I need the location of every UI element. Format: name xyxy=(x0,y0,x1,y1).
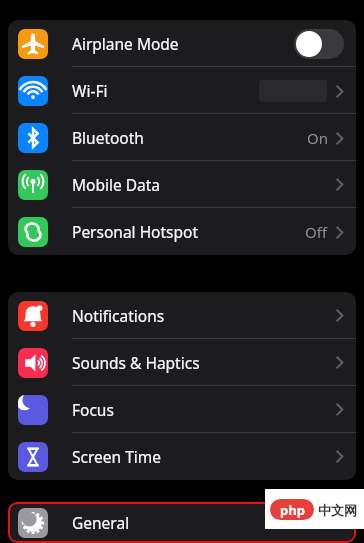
staticText: php xyxy=(280,501,305,519)
staticText: Focus xyxy=(72,399,114,420)
staticText: Wi-Fi xyxy=(72,80,108,101)
button[interactable]: Focus xyxy=(8,386,356,433)
button[interactable]: Personal Hotspot xyxy=(8,208,356,255)
staticText: 中文网 xyxy=(318,502,357,518)
staticText: General xyxy=(72,512,130,533)
button[interactable]: Airplane Mode toggle, off xyxy=(294,29,344,59)
button[interactable]: Airplane Mode xyxy=(8,20,356,67)
staticText: Airplane Mode xyxy=(72,33,179,54)
staticText: Personal Hotspot xyxy=(72,221,199,242)
staticText: Sounds & Haptics xyxy=(72,352,200,373)
button[interactable]: Notifications xyxy=(8,292,356,339)
staticText: Screen Time xyxy=(72,446,161,467)
button[interactable]: General xyxy=(8,502,356,543)
button[interactable]: Sounds & Haptics xyxy=(8,339,356,386)
staticText: Off xyxy=(305,222,328,242)
staticText: On xyxy=(307,128,328,148)
staticText: Mobile Data xyxy=(72,174,161,195)
staticText: @thegeekpage.com xyxy=(22,314,182,337)
button[interactable]: Mobile Data xyxy=(8,161,356,208)
button[interactable]: Bluetooth xyxy=(8,114,356,161)
staticText: Notifications xyxy=(72,305,165,326)
button[interactable]: Screen Time xyxy=(8,433,356,480)
button[interactable]: Wi-Fi xyxy=(8,67,356,114)
staticText: Bluetooth xyxy=(72,127,144,148)
